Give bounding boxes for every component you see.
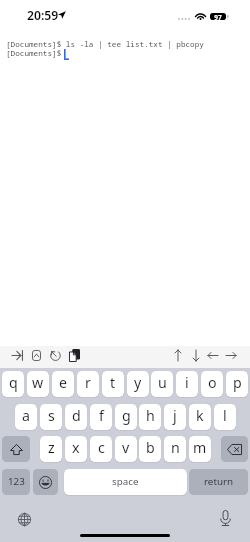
button[interactable]: Dictate — [213, 506, 237, 530]
staticText: o — [208, 373, 217, 392]
button[interactable]: q — [2, 371, 24, 397]
staticText: b — [146, 438, 155, 457]
button[interactable]: h — [139, 404, 161, 430]
button[interactable]: f — [90, 404, 112, 430]
staticText: [Documents]$ ls -la | tee list.txt | pbc… — [6, 39, 204, 49]
staticText: a — [22, 406, 30, 425]
button[interactable]: t — [102, 371, 124, 397]
button[interactable]: o — [201, 371, 223, 397]
staticText: l — [223, 406, 227, 425]
button[interactable]: l — [214, 404, 236, 430]
button[interactable]: e — [52, 371, 74, 397]
button[interactable]: d — [65, 404, 87, 430]
button[interactable]: z — [40, 436, 62, 462]
button[interactable]: space — [64, 469, 187, 495]
button[interactable]: v — [115, 436, 137, 462]
staticText: d — [72, 406, 81, 425]
staticText: y — [134, 373, 142, 392]
staticText: r — [85, 373, 91, 392]
staticText: 123 — [8, 475, 25, 488]
staticText: s — [48, 406, 55, 425]
button[interactable]: x — [65, 436, 87, 462]
button[interactable]: Paste — [64, 346, 84, 368]
button[interactable]: Switch keyboard — [12, 507, 36, 531]
staticText: u — [158, 373, 167, 392]
staticText: m — [193, 438, 207, 457]
button[interactable]: m — [189, 436, 211, 462]
button[interactable]: Tab — [7, 346, 27, 368]
staticText: q — [9, 373, 18, 392]
button[interactable]: Shift — [2, 436, 30, 462]
staticText: i — [185, 373, 189, 392]
button[interactable]: Right — [222, 346, 240, 368]
button[interactable]: Up — [169, 346, 187, 368]
button[interactable]: i — [176, 371, 198, 397]
staticText: v — [122, 438, 130, 457]
button[interactable]: a — [15, 404, 37, 430]
button[interactable]: c — [90, 436, 112, 462]
button[interactable]: Left — [204, 346, 222, 368]
button[interactable]: r — [77, 371, 99, 397]
staticText: w — [32, 373, 44, 392]
staticText: 20:59 — [27, 7, 59, 24]
button[interactable]: return — [189, 469, 248, 495]
button[interactable]: History — [45, 346, 65, 368]
button[interactable]: Control — [26, 346, 46, 368]
staticText: t — [110, 373, 116, 392]
staticText: g — [122, 406, 131, 425]
button[interactable]: Emoji — [33, 469, 58, 495]
staticText: x — [72, 438, 80, 457]
button[interactable]: j — [164, 404, 186, 430]
staticText: j — [173, 406, 177, 425]
staticText: 97 — [210, 13, 226, 22]
button[interactable]: k — [189, 404, 211, 430]
button[interactable]: Down — [187, 346, 205, 368]
staticText: return — [204, 475, 234, 488]
button[interactable]: p — [226, 371, 248, 397]
staticText: n — [171, 438, 180, 457]
staticText: f — [99, 406, 104, 425]
staticText: e — [59, 373, 68, 392]
button[interactable]: Backspace — [221, 436, 248, 462]
button[interactable]: u — [151, 371, 173, 397]
staticText: h — [146, 406, 155, 425]
staticText: p — [233, 373, 242, 392]
button[interactable]: n — [164, 436, 186, 462]
button[interactable]: y — [127, 371, 149, 397]
staticText: c — [98, 438, 105, 457]
staticText: [Documents]$ — [6, 48, 62, 58]
staticText: k — [196, 406, 204, 425]
staticText: z — [48, 438, 55, 457]
button[interactable]: 123 — [2, 469, 30, 495]
staticText: space — [112, 475, 139, 488]
button[interactable]: w — [27, 371, 49, 397]
button[interactable]: g — [115, 404, 137, 430]
button[interactable]: s — [40, 404, 62, 430]
button[interactable]: b — [139, 436, 161, 462]
